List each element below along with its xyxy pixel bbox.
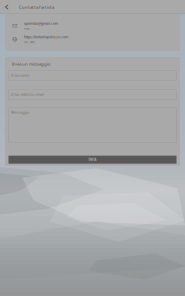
- staticText: Contatta l'artista: [19, 4, 54, 10]
- button[interactable]: Il tuo indirizzo email: [8, 90, 176, 100]
- staticText: aprimi4o@gmail.com: [24, 21, 58, 26]
- button[interactable]: aprimi4o@gmail.com: [5, 19, 180, 32]
- button[interactable]: INVIA: [8, 156, 176, 164]
- staticText: https://antoniopolozzo.com: [24, 35, 68, 39]
- button[interactable]: https://antoniopolozzo.com: [5, 32, 180, 46]
- staticText: Il tuo nome: [11, 73, 29, 77]
- staticText: Email: [24, 27, 30, 30]
- staticText: Il tuo indirizzo email: [11, 92, 44, 96]
- staticText: Invia un messaggio: [12, 61, 51, 67]
- button[interactable]: Il tuo nome: [8, 71, 176, 81]
- button[interactable]: Back: [0, 0, 14, 14]
- staticText: Messaggio: [11, 110, 29, 114]
- staticText: INVIA: [88, 158, 96, 162]
- staticText: Sito Web: [24, 41, 35, 44]
